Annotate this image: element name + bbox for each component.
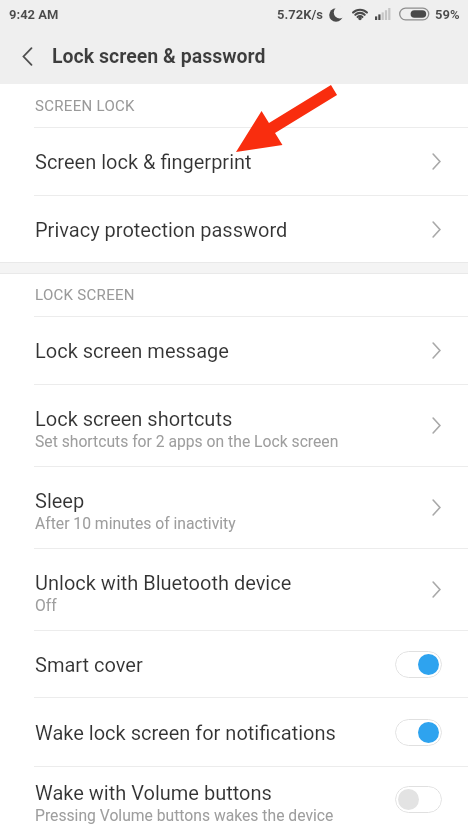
staticText: Smart cover <box>35 653 143 676</box>
staticText: 5.72K/s <box>277 7 323 22</box>
staticText: Off <box>35 596 57 614</box>
staticText: Lock screen message <box>35 339 229 362</box>
button[interactable]: Privacy protection password <box>0 196 468 262</box>
staticText: Lock screen & password <box>52 45 266 68</box>
button[interactable]: Unlock with Bluetooth device <box>0 549 468 630</box>
button[interactable]: Lock screen & password <box>0 28 468 84</box>
button[interactable]: Sleep <box>0 467 468 548</box>
staticText: 9:42 AM <box>9 7 59 22</box>
button[interactable]: Smart cover <box>0 631 468 697</box>
staticText: 59% <box>435 7 460 22</box>
staticText: Wake with Volume buttons <box>35 781 272 804</box>
staticText: Sleep <box>35 489 85 512</box>
staticText: LOCK SCREEN <box>35 286 135 304</box>
staticText: After 10 minutes of inactivity <box>35 514 236 532</box>
staticText: Lock screen shortcuts <box>35 407 233 430</box>
button[interactable]: Wake lock screen for notifications <box>0 698 468 766</box>
staticText: Unlock with Bluetooth device <box>35 571 292 594</box>
button[interactable]: Lock screen message <box>0 317 468 384</box>
staticText: Screen lock & fingerprint <box>35 150 252 173</box>
staticText: Set shortcuts for 2 apps on the Lock scr… <box>35 432 339 450</box>
button[interactable]: Wake with Volume buttons <box>0 767 468 832</box>
staticText: Privacy protection password <box>35 218 288 241</box>
staticText: SCREEN LOCK <box>35 97 135 115</box>
button[interactable]: Lock screen shortcuts <box>0 385 468 466</box>
staticText: Pressing Volume buttons wakes the device <box>35 806 334 824</box>
staticText: Wake lock screen for notifications <box>35 721 336 744</box>
button[interactable]: Screen lock & fingerprint <box>0 128 468 195</box>
